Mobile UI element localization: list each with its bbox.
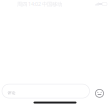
- button[interactable]: 评论: [2, 84, 89, 98]
- button[interactable]: Emoji: [95, 85, 103, 97]
- staticText: 评论: [7, 90, 15, 95]
- staticText: 周四 14:02 中国移动: [17, 0, 62, 8]
